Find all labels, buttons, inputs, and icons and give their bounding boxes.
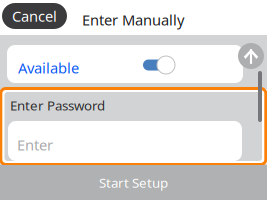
staticText: Available bbox=[18, 58, 79, 77]
staticText: Cancel bbox=[12, 6, 57, 26]
button[interactable]: Start Setup bbox=[0, 165, 267, 200]
staticText: Start Setup bbox=[99, 174, 168, 191]
button[interactable]: Enter Password bbox=[8, 121, 242, 161]
button[interactable]: Available bbox=[143, 56, 175, 74]
button[interactable]: Scroll to top bbox=[238, 43, 264, 69]
button[interactable]: Cancel bbox=[2, 3, 67, 29]
staticText: Enter Manually bbox=[82, 10, 184, 29]
staticText: Enter Password bbox=[10, 96, 105, 114]
staticText: Enter bbox=[17, 135, 53, 154]
